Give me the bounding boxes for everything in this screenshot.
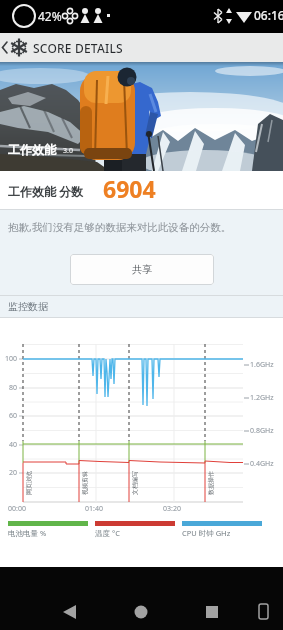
staticText: 03:20 (163, 504, 181, 514)
staticText: 06:16 (254, 7, 283, 23)
staticText: 电池电量 % (8, 528, 47, 538)
staticText: 1.6GHz (250, 360, 274, 370)
button[interactable] (126, 597, 156, 627)
staticText: 共享 (132, 263, 152, 276)
staticText: 00:00 (8, 504, 26, 514)
staticText: 42% (38, 8, 62, 24)
staticText: 1.2GHz (250, 393, 274, 403)
staticText: 100 (5, 354, 18, 364)
staticText: 0.4GHz (250, 459, 274, 469)
button[interactable] (55, 597, 85, 627)
staticText: 6904 (103, 173, 156, 204)
staticText: 网页浏览 (25, 471, 33, 495)
staticText: 抱歉,我们没有足够的数据来对比此设备的分数。 (8, 220, 232, 234)
staticText: 01:40 (85, 504, 103, 514)
button[interactable]: 共享 (70, 254, 214, 285)
staticText: 工作效能 (8, 142, 56, 157)
staticText: 60 (9, 411, 18, 421)
staticText: 温度 °C (95, 528, 120, 538)
staticText: 3.0 (63, 146, 73, 156)
button[interactable]: SCORE DETAILS (0, 33, 283, 62)
staticText: 监控数据 (8, 300, 48, 313)
staticText: 文档编写 (131, 471, 139, 495)
staticText: 视频剪辑 (81, 471, 89, 495)
staticText: 0.8GHz (250, 426, 274, 436)
staticText: 40 (9, 440, 18, 450)
staticText: SCORE DETAILS (33, 40, 123, 56)
staticText: CPU 时钟 GHz (182, 528, 231, 538)
staticText: 20 (9, 468, 18, 478)
button[interactable] (196, 597, 226, 627)
staticText: 工作效能 分数 (8, 183, 84, 199)
staticText: 80 (9, 383, 18, 393)
staticText: 数据操作 (207, 471, 215, 495)
